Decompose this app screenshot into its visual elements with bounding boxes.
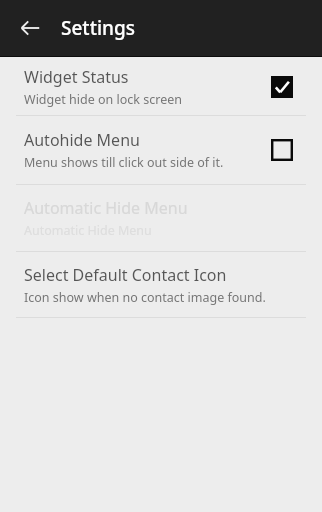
staticText: Autohide Menu bbox=[24, 129, 140, 151]
staticText: Widget hide on lock screen bbox=[24, 91, 182, 108]
button[interactable]: Select Default Contact Icon bbox=[0, 252, 322, 317]
staticText: Settings bbox=[61, 15, 135, 41]
button: Automatic Hide Menu bbox=[0, 185, 322, 251]
staticText: Menu shows till click out side of it. bbox=[24, 154, 224, 171]
button[interactable]: Widget Status bbox=[0, 59, 322, 115]
staticText: Automatic Hide Menu bbox=[24, 197, 188, 219]
staticText: Widget Status bbox=[24, 66, 129, 88]
staticText: Icon show when no contact image found. bbox=[24, 289, 266, 306]
button[interactable]: Widget Status bbox=[262, 67, 302, 107]
button[interactable]: Autohide Menu bbox=[0, 116, 322, 184]
button[interactable]: Autohide Menu bbox=[262, 130, 302, 170]
staticText: Automatic Hide Menu bbox=[24, 222, 152, 239]
button[interactable]: Back bbox=[8, 6, 52, 50]
staticText: Select Default Contact Icon bbox=[24, 264, 227, 286]
